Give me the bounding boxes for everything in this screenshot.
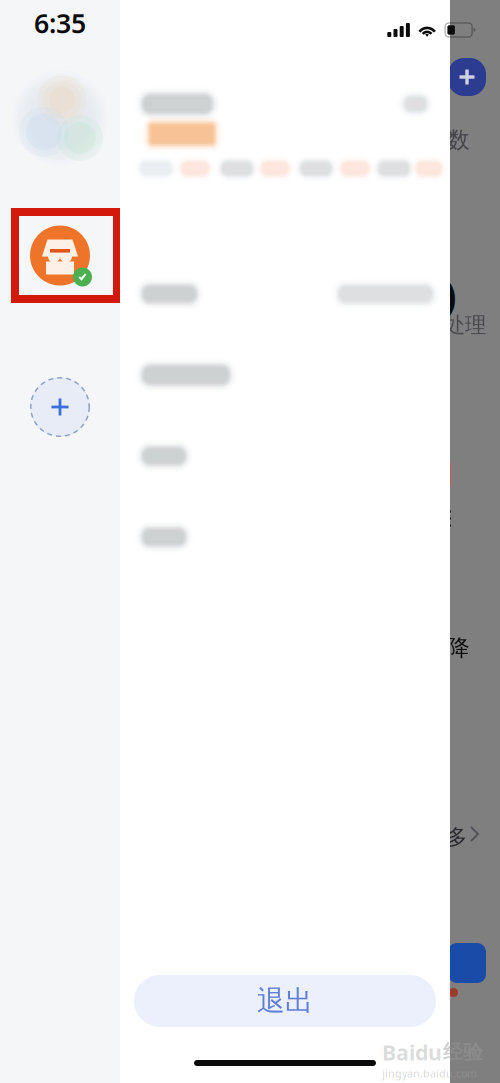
staticText: ) — [443, 268, 457, 321]
button[interactable]: Shop account — [0, 208, 120, 303]
staticText: 处理 — [444, 312, 486, 338]
staticText: Baidu — [382, 1038, 442, 1066]
button[interactable]: 退出 — [134, 975, 436, 1027]
staticText: 经验 — [443, 1040, 483, 1064]
staticText: 6:35 — [34, 5, 86, 41]
staticText: 多 — [446, 824, 467, 850]
staticText: 降 — [447, 634, 470, 662]
staticText: jingyan.baidu.com — [382, 1066, 477, 1080]
staticText: 退出 — [257, 984, 313, 1018]
button[interactable]: Add account — [30, 377, 90, 437]
staticText: 数 — [447, 126, 470, 154]
